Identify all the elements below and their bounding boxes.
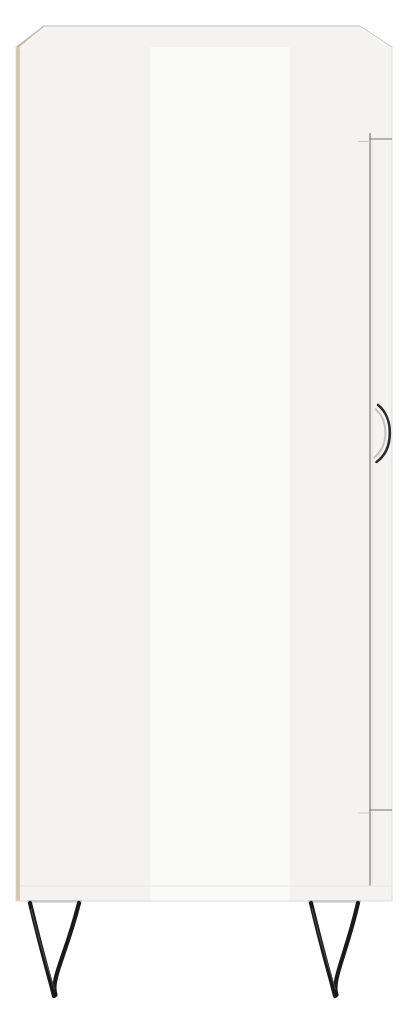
button[interactable]: White sideboard cabinet with hairpin leg…	[0, 0, 409, 1013]
